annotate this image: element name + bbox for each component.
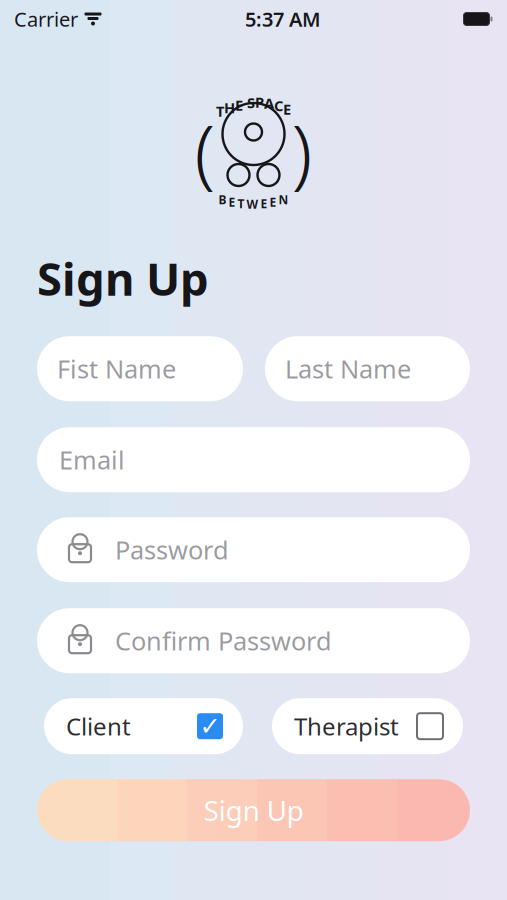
staticText: C bbox=[274, 96, 283, 115]
staticText: Email bbox=[59, 443, 125, 476]
staticText: Sign Up bbox=[203, 792, 303, 829]
staticText: ) bbox=[291, 101, 312, 201]
button[interactable]: Last Name bbox=[265, 336, 470, 401]
staticText: ( bbox=[194, 101, 215, 201]
staticText: Password bbox=[115, 533, 229, 566]
staticText: B bbox=[218, 191, 226, 207]
staticText: E bbox=[228, 194, 235, 210]
staticText: E bbox=[269, 194, 276, 210]
staticText: T bbox=[237, 195, 244, 211]
staticText: 5:37 AM bbox=[245, 6, 321, 32]
staticText: Sign Up bbox=[37, 248, 209, 308]
button[interactable]: Client bbox=[44, 698, 243, 754]
staticText: A bbox=[264, 93, 274, 113]
staticText: ✓ bbox=[199, 712, 220, 741]
button[interactable]: Email bbox=[37, 427, 470, 492]
staticText: H bbox=[224, 98, 235, 117]
staticText: T bbox=[216, 101, 224, 121]
staticText: S bbox=[247, 93, 255, 112]
staticText: Carrier bbox=[14, 6, 78, 32]
staticText: Client bbox=[66, 710, 131, 742]
staticText: E bbox=[260, 195, 267, 211]
staticText: Fist Name bbox=[57, 352, 176, 385]
staticText: E bbox=[283, 99, 291, 119]
button[interactable]: Confirm Password bbox=[37, 608, 470, 673]
staticText: E bbox=[235, 95, 243, 115]
staticText: P bbox=[255, 92, 264, 112]
staticText bbox=[243, 94, 247, 113]
button[interactable]: Password bbox=[37, 517, 470, 582]
button[interactable]: Therapist bbox=[272, 698, 463, 754]
staticText: N bbox=[278, 191, 288, 207]
staticText: Therapist bbox=[294, 710, 399, 742]
button[interactable]: Fist Name bbox=[37, 336, 243, 401]
staticText: W bbox=[246, 196, 258, 212]
staticText: Confirm Password bbox=[115, 624, 332, 657]
button[interactable]: Sign Up bbox=[37, 779, 470, 841]
staticText: Last Name bbox=[285, 352, 411, 385]
